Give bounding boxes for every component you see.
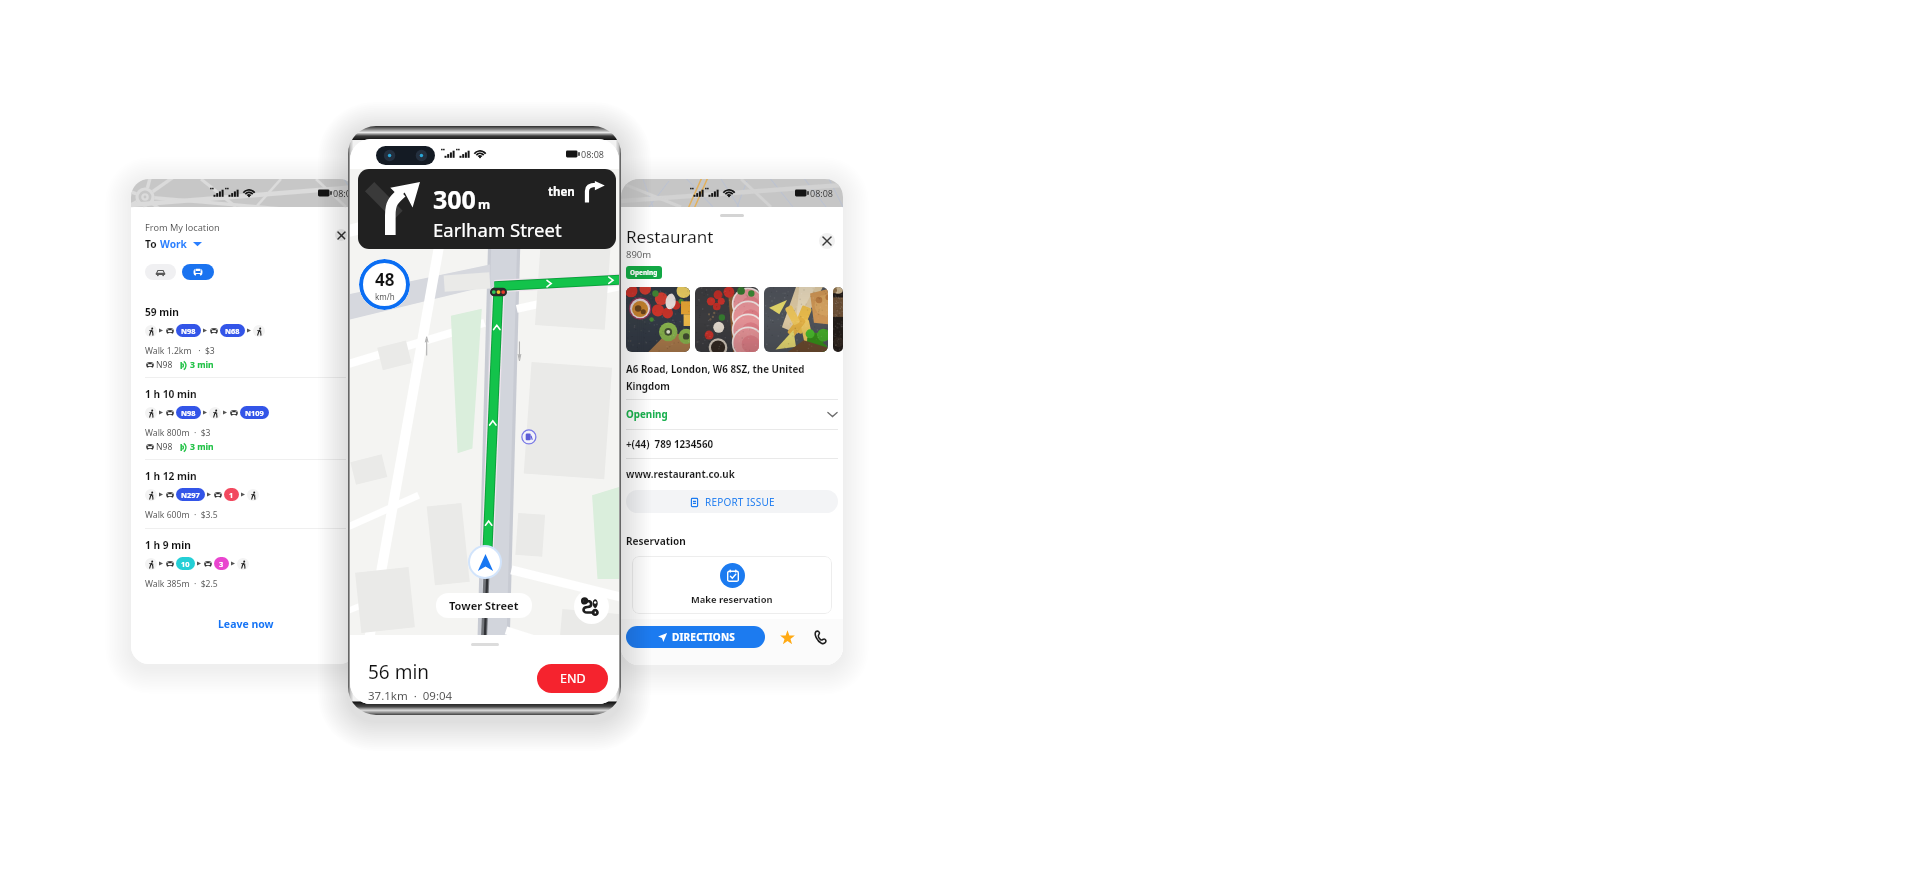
button[interactable]: END [537, 664, 608, 693]
button[interactable]: 1 h 9 min [145, 538, 346, 597]
staticText: 300 [433, 182, 476, 216]
staticText: Walk 1.2km · $3 [145, 345, 215, 357]
button[interactable]: 59 min [145, 305, 346, 387]
staticText: Tower Street [449, 598, 519, 613]
staticText: 59 min [145, 305, 179, 319]
button[interactable]: Call [810, 627, 830, 647]
button[interactable]: Make reservation [632, 556, 832, 614]
staticText: REPORT ISSUE [705, 495, 775, 509]
staticText: DIRECTIONS [672, 630, 735, 644]
button[interactable]: Photo [764, 287, 828, 352]
button[interactable]: Close [819, 233, 835, 249]
staticText: 1 h 10 min [145, 387, 197, 401]
staticText: 48 [375, 268, 395, 291]
staticText: then [548, 184, 575, 200]
staticText: N98 [156, 359, 173, 371]
staticText: Make reservation [691, 593, 773, 606]
staticText: Earlham Street [433, 217, 562, 242]
staticText: 3 min [190, 359, 214, 371]
button[interactable]: 1 h 10 min [145, 387, 346, 469]
staticText: Leave now [218, 617, 274, 631]
button[interactable]: Photo [833, 287, 843, 352]
staticText: 56 min [368, 659, 430, 685]
staticText: 3 min [190, 441, 214, 453]
button[interactable]: Close [335, 229, 347, 241]
staticText: 10 [181, 559, 190, 569]
staticText: Opening [630, 268, 658, 277]
staticText: 1 h 9 min [145, 538, 191, 552]
staticText: Reservation [626, 534, 686, 548]
button[interactable]: Route overview [574, 589, 609, 624]
button[interactable]: 1 h 12 min [145, 469, 346, 538]
button[interactable]: DIRECTIONS [626, 626, 765, 648]
staticText: Walk 800m · $3 [145, 427, 211, 439]
staticText: N98 [156, 441, 173, 453]
staticText: 3 [219, 559, 224, 569]
staticText: 1 h 12 min [145, 469, 197, 483]
staticText: N98 [181, 326, 196, 336]
staticText: 1 [229, 490, 234, 500]
staticText: N98 [181, 408, 196, 418]
button[interactable]: Favourite [777, 627, 797, 647]
staticText: Opening [626, 408, 668, 421]
staticText: A6 Road, London, W6 8SZ, the United King… [626, 363, 838, 392]
staticText: 08:08 [333, 187, 357, 199]
button[interactable]: Opening [626, 408, 838, 421]
staticText: 08:08 [581, 148, 605, 160]
staticText: Restaurant [626, 225, 714, 248]
staticText: To [145, 237, 160, 251]
staticText: Work [160, 237, 187, 251]
staticText: www.restaurant.co.uk [626, 468, 735, 481]
staticText: 37.1km · 09:04 [368, 688, 453, 704]
staticText: END [560, 670, 586, 687]
button[interactable]: Transit [182, 264, 214, 280]
staticText: 890m [626, 248, 652, 261]
button[interactable]: REPORT ISSUE [626, 490, 838, 513]
button[interactable]: Drive [145, 264, 176, 280]
staticText: From My location [145, 221, 220, 234]
staticText: Walk 600m · $3.5 [145, 509, 218, 521]
button[interactable]: Photo [695, 287, 759, 352]
staticText: Walk 385m · $2.5 [145, 578, 218, 590]
staticText: N68 [225, 326, 240, 336]
staticText: m [478, 196, 491, 213]
button[interactable]: Photo [626, 287, 690, 352]
staticText: N109 [245, 408, 264, 418]
staticText: N297 [181, 490, 200, 500]
button[interactable]: Leave now [210, 613, 282, 635]
staticText: 08:08 [810, 187, 834, 199]
staticText: km/h [375, 291, 395, 302]
staticText: +(44) 789 1234560 [626, 438, 714, 451]
